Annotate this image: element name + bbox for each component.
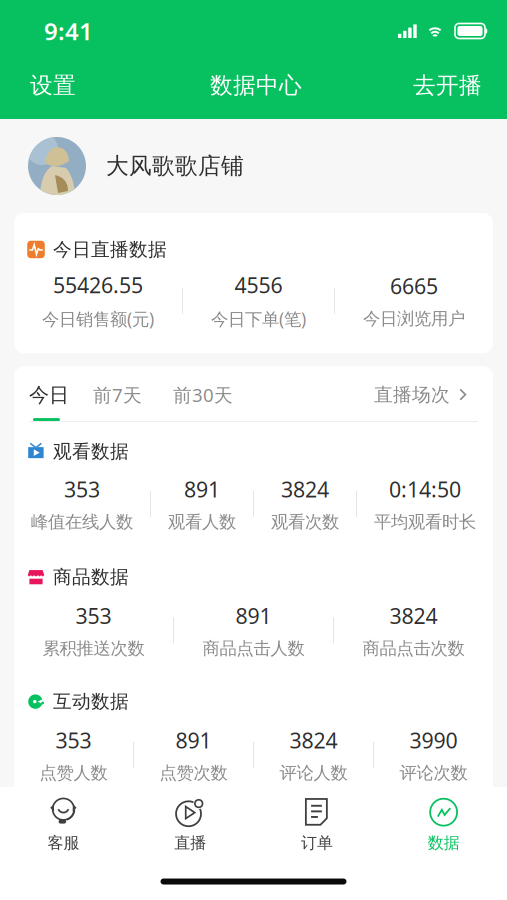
staticText: 353	[64, 475, 100, 503]
staticText: 数据中心	[210, 72, 302, 99]
button[interactable]: 直播场次	[374, 383, 467, 420]
staticText: 商品点击次数	[362, 638, 464, 659]
staticText: 互动数据	[53, 690, 129, 713]
button[interactable]: 数据	[380, 787, 507, 863]
staticText: 客服	[47, 833, 79, 853]
staticText: 今日下单(笔)	[211, 307, 306, 330]
staticText: 353	[75, 601, 111, 630]
button[interactable]: 设置	[30, 52, 140, 119]
staticText: 55426.55	[53, 271, 143, 299]
staticText: 观看人数	[168, 511, 236, 533]
staticText: 891	[235, 601, 271, 630]
staticText: 353	[55, 726, 91, 754]
button[interactable]: 今日	[29, 383, 69, 420]
staticText: 峰值在线人数	[31, 511, 133, 533]
staticText: 点赞次数	[159, 762, 227, 784]
staticText: 0:14:50	[389, 475, 461, 503]
staticText: 商品点击人数	[202, 638, 304, 659]
staticText: 3990	[409, 726, 457, 754]
button[interactable]: 客服	[0, 787, 127, 863]
staticText: 6665	[390, 272, 438, 300]
staticText: 直播	[174, 833, 206, 853]
staticText: 去开播	[413, 72, 482, 99]
staticText: 直播场次	[374, 383, 450, 406]
staticText: 评论次数	[399, 762, 467, 784]
staticText: 评论人数	[279, 762, 347, 784]
staticText: 3824	[389, 601, 437, 630]
staticText: 891	[175, 726, 211, 754]
staticText: 平均观看时长	[374, 511, 476, 533]
button[interactable]: 前30天	[142, 382, 233, 421]
staticText: 观看数据	[53, 440, 129, 463]
staticText: 前30天	[173, 382, 233, 407]
staticText: 今日直播数据	[53, 238, 167, 261]
staticText: 设置	[30, 72, 76, 99]
staticText: 订单	[301, 833, 333, 853]
staticText: 前7天	[93, 382, 142, 407]
button[interactable]: 订单	[253, 787, 380, 863]
staticText: 4556	[234, 271, 282, 299]
staticText: 9:41	[44, 15, 93, 47]
staticText: 商品数据	[53, 566, 129, 588]
staticText: 今日浏览用户	[363, 308, 465, 329]
staticText: 点赞人数	[39, 762, 107, 784]
staticText: 数据	[428, 833, 460, 853]
staticText: 累积推送次数	[42, 638, 144, 659]
staticText: 今日销售额(元)	[42, 307, 154, 330]
staticText: 大风歌歌店铺	[106, 152, 244, 180]
staticText: 3824	[281, 475, 329, 503]
button[interactable]: 前7天	[69, 382, 142, 421]
button[interactable]: 去开播	[372, 52, 482, 119]
staticText: 今日	[29, 383, 69, 407]
staticText: 观看次数	[271, 511, 339, 533]
staticText: 3824	[289, 726, 337, 754]
button[interactable]: 直播	[127, 787, 254, 863]
staticText: 891	[184, 475, 220, 503]
